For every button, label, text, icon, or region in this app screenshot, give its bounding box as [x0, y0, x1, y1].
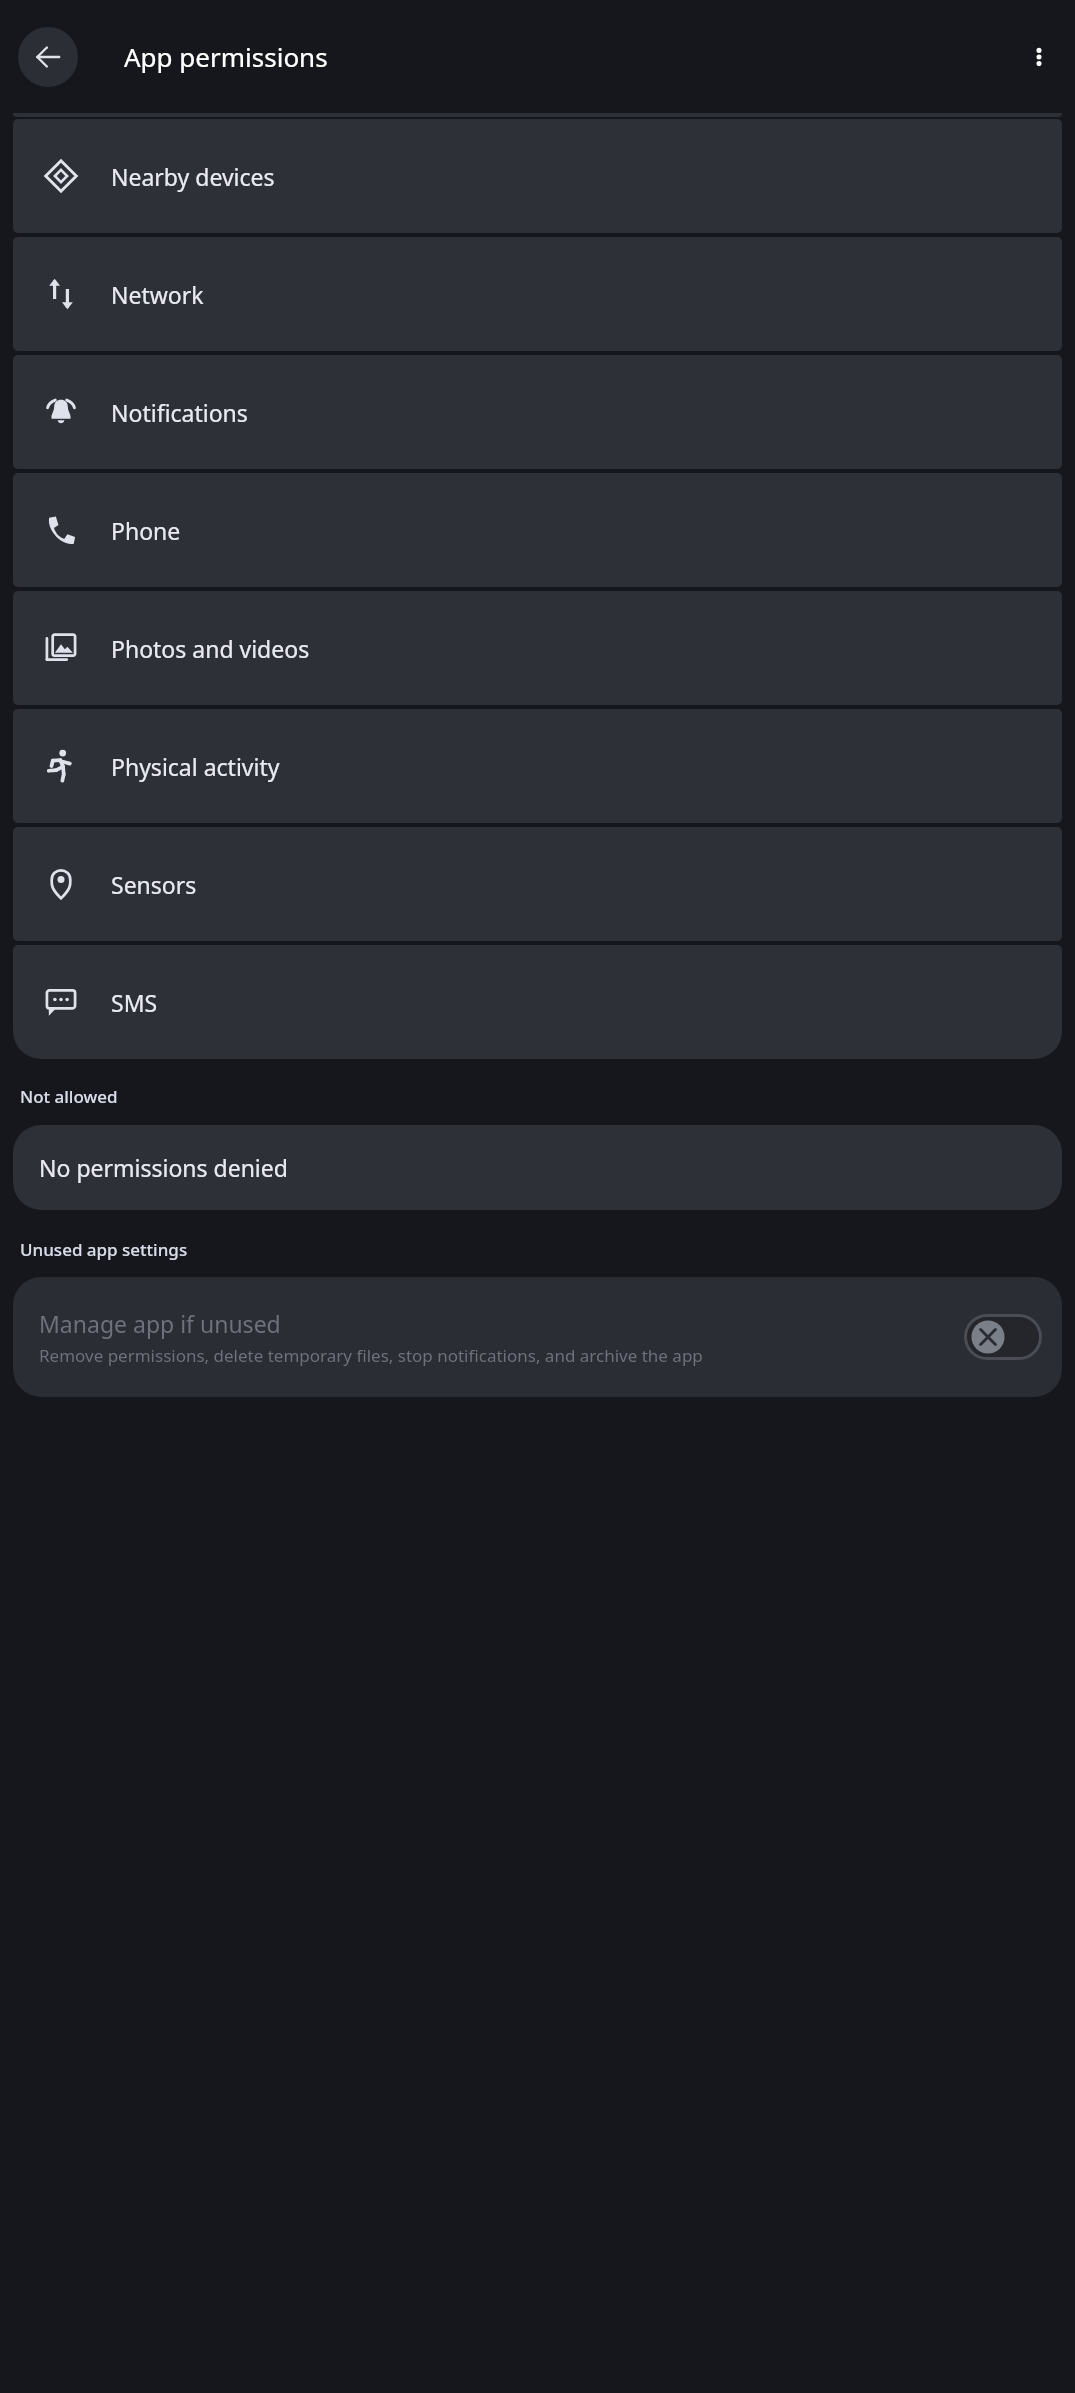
staticText: Manage app if unused: [39, 1308, 281, 1339]
staticText: Notifications: [111, 397, 248, 428]
staticText: Remove permissions, delete temporary fil…: [39, 1344, 703, 1367]
staticText: Unused app settings: [20, 1238, 188, 1261]
button[interactable]: Phone: [13, 473, 1062, 587]
button[interactable]: Nearby devices: [13, 119, 1062, 233]
staticText: Network: [111, 279, 204, 310]
staticText: No permissions denied: [39, 1152, 288, 1183]
button[interactable]: Network: [13, 237, 1062, 351]
staticText: SMS: [111, 987, 158, 1018]
staticText: Not allowed: [20, 1085, 118, 1108]
staticText: Physical activity: [111, 751, 280, 782]
button[interactable]: No permissions denied: [13, 1125, 1062, 1210]
staticText: Phone: [111, 515, 181, 546]
button[interactable]: Photos and videos: [13, 591, 1062, 705]
staticText: Photos and videos: [111, 633, 310, 664]
button[interactable]: Notifications: [13, 355, 1062, 469]
staticText: App permissions: [124, 39, 328, 74]
staticText: Sensors: [111, 869, 197, 900]
button[interactable]: Manage app if unused: [13, 1277, 1062, 1397]
button[interactable]: SMS: [13, 945, 1062, 1059]
button[interactable]: More options: [1011, 29, 1067, 85]
button[interactable]: Manage app if unused toggle, off: [964, 1314, 1042, 1360]
staticText: Nearby devices: [111, 161, 275, 192]
button[interactable]: Physical activity: [13, 709, 1062, 823]
button[interactable]: Back: [18, 27, 78, 87]
button[interactable]: Sensors: [13, 827, 1062, 941]
